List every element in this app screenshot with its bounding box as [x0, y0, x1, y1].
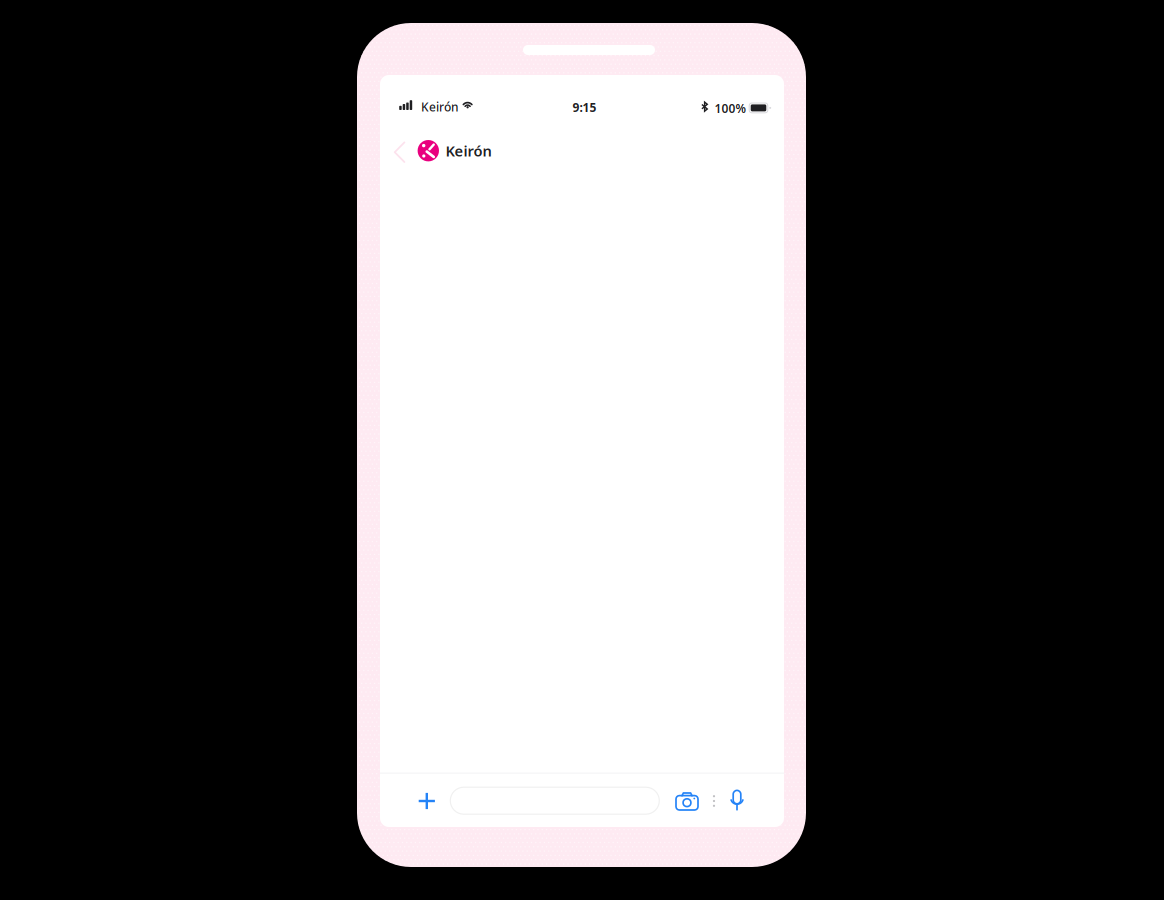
staticText: 9:15 — [573, 99, 597, 115]
button[interactable]: Voice message — [380, 75, 402, 101]
button[interactable]: Keirón — [380, 75, 462, 108]
button[interactable]: More options — [380, 75, 398, 105]
button[interactable]: Add attachment — [380, 75, 410, 109]
staticText: Keirón — [421, 99, 459, 115]
button[interactable]: Camera — [380, 75, 410, 105]
staticText: Keirón — [446, 141, 492, 160]
staticText: 100% — [715, 100, 747, 116]
button[interactable]: Back — [380, 75, 402, 111]
